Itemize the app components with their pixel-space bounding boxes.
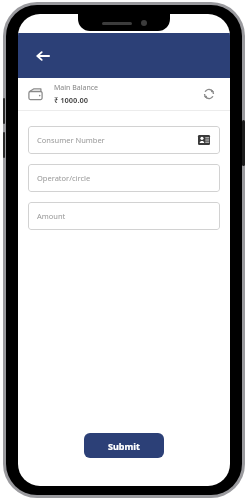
button[interactable]: Main Balance (18, 78, 230, 110)
button[interactable]: Submit (84, 433, 164, 458)
staticText: Submit (108, 440, 140, 452)
button[interactable]: Refresh balance (198, 83, 220, 105)
button[interactable]: Back (26, 39, 60, 73)
staticText: Main Balance (54, 83, 99, 93)
staticText: Operator/circle (37, 173, 91, 183)
button[interactable]: Amount (28, 202, 220, 230)
button[interactable]: Operator/circle (28, 164, 220, 192)
staticText: ₹ 1000.00 (54, 95, 89, 105)
button[interactable]: Consumer Number (28, 126, 220, 154)
staticText: Amount (37, 211, 66, 221)
button[interactable]: Pick contact (197, 133, 211, 147)
staticText: Consumer Number (37, 135, 105, 145)
